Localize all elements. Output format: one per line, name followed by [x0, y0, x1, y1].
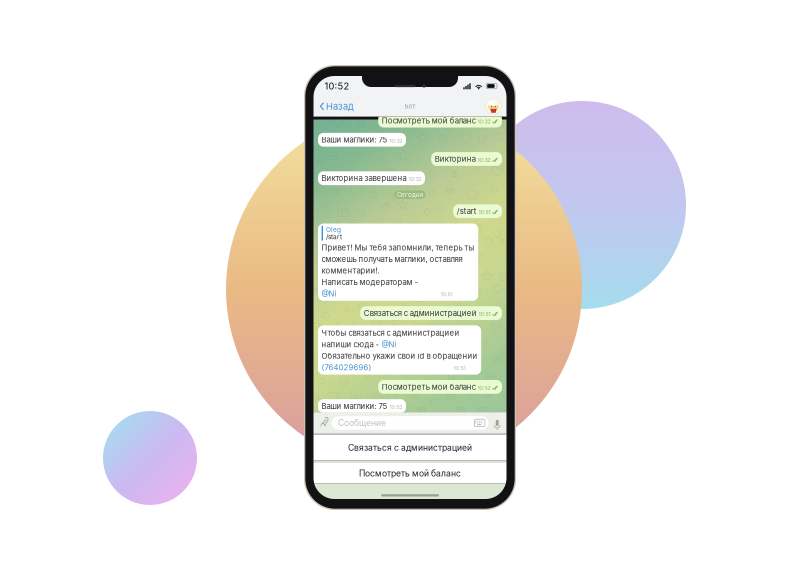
- staticText: Ваши маглики: 75: [322, 401, 388, 411]
- staticText: Назад: [326, 101, 354, 112]
- staticText: напиши сюда -: [322, 340, 382, 349]
- staticText: 10:51: [441, 291, 453, 298]
- button[interactable]: Voice message: [488, 418, 503, 428]
- button[interactable]: Связаться с администрацией: [313, 435, 506, 461]
- staticText: @Ni: [322, 289, 337, 298]
- staticText: комментарии!.: [322, 266, 380, 275]
- staticText: (764029696): [322, 363, 372, 372]
- staticText: 10:52: [478, 385, 491, 391]
- staticText: Ваши маглики: 75: [322, 135, 388, 144]
- staticText: Связаться с администрацией: [364, 308, 477, 318]
- staticText: /start: [326, 233, 342, 241]
- staticText: Привет! Мы тебя запомнили, теперь ты: [322, 243, 475, 252]
- button[interactable]: Посмотреть мой баланс: [313, 463, 506, 484]
- staticText: 10:51: [479, 311, 491, 317]
- staticText: Связаться с администрацией: [348, 442, 472, 453]
- button[interactable]: Chat profile: [485, 98, 501, 114]
- button[interactable]: Назад: [319, 97, 354, 116]
- staticText: Викторина завершена: [322, 173, 407, 183]
- staticText: Написать модераторам -: [322, 277, 419, 287]
- staticText: Посмотреть мой баланс: [382, 116, 476, 125]
- staticText: 10:51: [479, 209, 491, 215]
- staticText: 10:52: [389, 404, 402, 410]
- staticText: Посмотреть мой баланс: [359, 468, 461, 478]
- staticText: Посмотреть мой баланс: [382, 382, 476, 392]
- button[interactable]: Keyboard: [474, 419, 485, 427]
- staticText: Обязательно укажи свой id в обращении: [322, 351, 478, 361]
- staticText: 10:32: [478, 118, 491, 125]
- staticText: Сообщение: [338, 418, 386, 428]
- staticText: Oleg: [326, 225, 341, 233]
- staticText: Сегодня: [397, 191, 423, 198]
- staticText: 10:51: [454, 365, 466, 371]
- button[interactable]: Attach: [317, 418, 332, 428]
- staticText: Чтобы связаться с администрацией: [322, 328, 460, 338]
- staticText: @Ni: [382, 340, 397, 349]
- staticText: /start: [457, 206, 477, 216]
- staticText: 10:32: [478, 157, 491, 163]
- staticText: 10:32: [389, 137, 402, 144]
- staticText: сможешь получать маглики, оставляя: [322, 254, 463, 264]
- staticText: бот: [404, 103, 415, 110]
- staticText: 10:52: [324, 80, 349, 92]
- staticText: 10:32: [408, 176, 421, 182]
- staticText: Викторина: [435, 154, 476, 164]
